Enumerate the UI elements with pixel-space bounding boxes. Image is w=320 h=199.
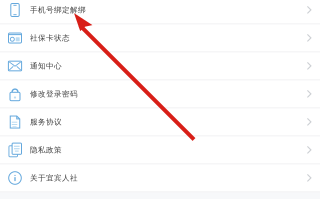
button[interactable]: 社保卡状态 [0,24,320,52]
staticText: 手机号绑定解绑 [30,5,86,15]
staticText: 修改登录密码 [30,89,78,99]
staticText: 服务协议 [30,117,62,127]
button[interactable]: 手机号绑定解绑 [0,0,320,24]
button[interactable]: 关于宜宾人社 [0,164,320,192]
button[interactable]: 服务协议 [0,108,320,136]
staticText: 关于宜宾人社 [30,173,78,183]
staticText: 隐私政策 [30,145,62,155]
button[interactable]: 隐私政策 [0,136,320,164]
button[interactable]: 修改登录密码 [0,80,320,108]
staticText: 通知中心 [30,61,62,71]
button[interactable]: 通知中心 [0,52,320,80]
staticText: 社保卡状态 [30,33,70,43]
